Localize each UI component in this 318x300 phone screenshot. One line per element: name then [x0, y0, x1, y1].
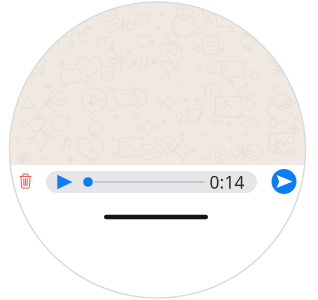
- button[interactable]: Send: [271, 169, 296, 194]
- staticText: 0:14: [209, 170, 244, 193]
- button[interactable]: Delete recording: [13, 167, 37, 194]
- button[interactable]: Play: [52, 171, 77, 193]
